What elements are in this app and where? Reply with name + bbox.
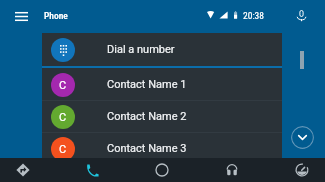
- staticText: Contact Name 3: [107, 142, 187, 155]
- button[interactable]: Media: [220, 158, 244, 182]
- button[interactable]: Recent calls: [290, 158, 314, 182]
- button[interactable]: C: [42, 69, 282, 100]
- staticText: C: [59, 111, 67, 124]
- button[interactable]: Scroll down: [291, 126, 314, 149]
- staticText: Dial a number: [107, 43, 175, 56]
- staticText: C: [59, 79, 67, 92]
- button[interactable]: Dial a number: [42, 33, 282, 66]
- staticText: Contact Name 2: [107, 110, 187, 123]
- button[interactable]: C: [42, 133, 282, 164]
- button[interactable]: Voice assistant: [290, 5, 312, 27]
- staticText: 20:38: [243, 10, 264, 21]
- button[interactable]: Home: [150, 158, 174, 182]
- button[interactable]: C: [42, 101, 282, 132]
- button[interactable]: Navigation: [11, 158, 35, 182]
- staticText: Contact Name 1: [107, 78, 187, 91]
- button[interactable]: Open navigation menu: [10, 6, 32, 26]
- staticText: C: [59, 143, 67, 156]
- button[interactable]: Phone: [80, 158, 104, 182]
- staticText: Phone: [44, 10, 68, 21]
